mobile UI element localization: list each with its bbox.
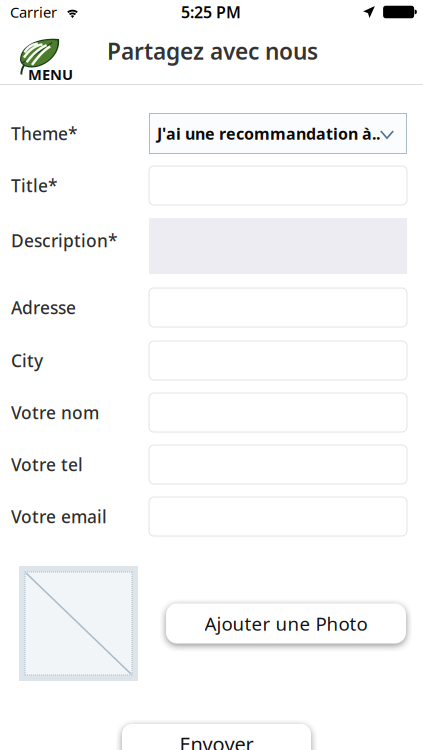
button[interactable] [149,497,407,536]
button[interactable] [149,341,407,380]
staticText: MENU [28,64,73,84]
staticText: Envoyer [179,731,253,750]
button[interactable] [149,393,407,432]
staticText: Votre tel [11,453,83,476]
button[interactable] [149,166,407,205]
staticText: City [11,349,43,372]
button[interactable] [149,445,407,484]
button[interactable]: Ajouter une Photo [166,603,406,643]
staticText: Description* [11,229,117,252]
button[interactable]: J'ai une recommandation à.. [149,113,407,154]
staticText: Carrier [10,2,57,22]
staticText: Adresse [11,296,76,319]
staticText: 5:25 PM [181,1,241,23]
staticText: J'ai une recommandation à.. [157,123,380,144]
staticText: Votre nom [11,401,99,424]
staticText: Theme* [11,122,77,145]
staticText: Partagez avec nous [107,36,318,66]
staticText: Ajouter une Photo [204,611,367,636]
staticText: Votre email [11,505,107,528]
button[interactable]: Envoyer [122,724,311,750]
button[interactable]: Menu [0,34,65,74]
staticText: Title* [11,174,57,197]
button[interactable] [149,288,407,327]
